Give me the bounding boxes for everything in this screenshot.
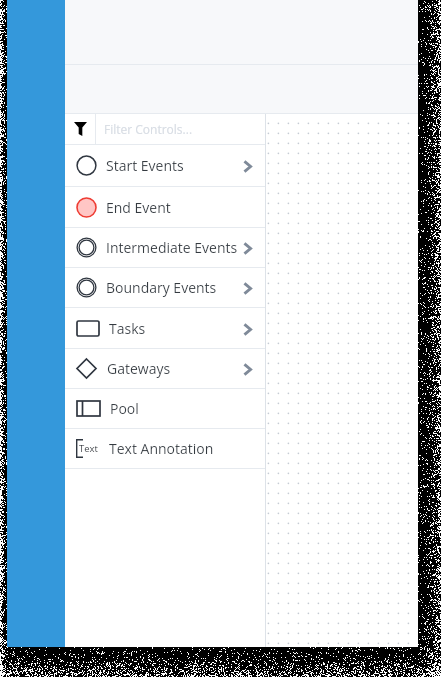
staticText: Text Annotation: [109, 439, 214, 458]
staticText: Text: [79, 442, 98, 455]
button[interactable]: Start Events: [65, 145, 265, 186]
button[interactable]: Gateways: [65, 349, 265, 388]
staticText: End Event: [106, 198, 171, 217]
button[interactable]: Text: [65, 429, 265, 468]
button[interactable]: Tasks: [65, 308, 265, 348]
button[interactable]: Pool: [65, 389, 265, 428]
staticText: Tasks: [109, 319, 146, 338]
staticText: Pool: [110, 399, 139, 418]
staticText: Gateways: [107, 359, 171, 378]
staticText: Filter Controls...: [104, 121, 193, 137]
button[interactable]: End Event: [65, 187, 265, 227]
staticText: Boundary Events: [106, 278, 217, 297]
staticText: Intermediate Events: [106, 238, 238, 257]
button[interactable]: Filter: [65, 114, 95, 144]
button[interactable]: Filter Controls...: [96, 114, 265, 144]
staticText: Start Events: [106, 156, 184, 175]
button[interactable]: Intermediate Events: [65, 228, 265, 267]
button[interactable]: Boundary Events: [65, 268, 265, 307]
